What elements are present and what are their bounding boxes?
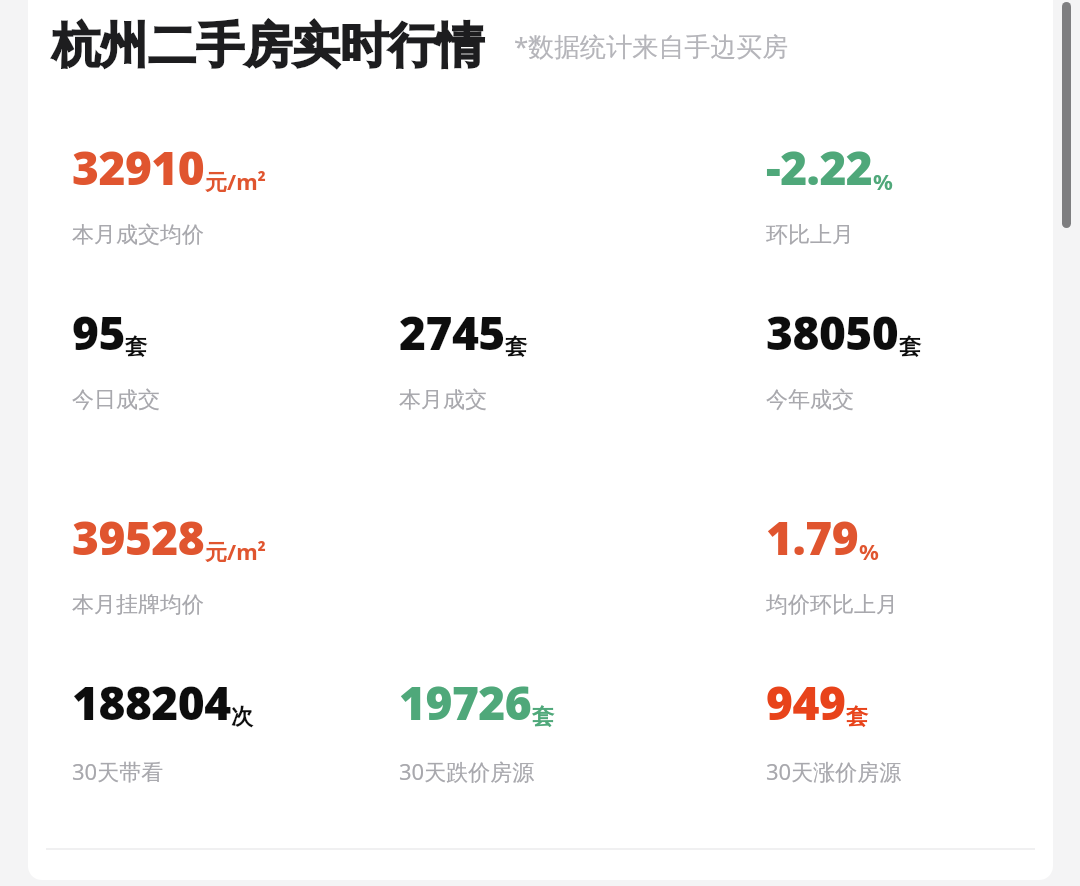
staticText: *数据统计来自手边买房 — [514, 28, 789, 64]
button[interactable]: 1.79 — [766, 506, 898, 619]
staticText: 2745 — [399, 301, 505, 364]
button[interactable]: 949 — [766, 671, 902, 786]
staticText: 今日成交 — [72, 386, 160, 414]
staticText: 套 — [505, 333, 527, 361]
staticText: 杭州二手房实时行情 — [52, 16, 484, 76]
button[interactable]: 32910 — [72, 136, 266, 249]
staticText: 1.79 — [766, 506, 859, 569]
staticText: 套 — [899, 333, 921, 361]
staticText: 949 — [766, 671, 846, 734]
button[interactable]: 95 — [72, 301, 160, 414]
staticText: % — [873, 166, 893, 196]
staticText: -2.22 — [766, 136, 873, 199]
staticText: 30天跌价房源 — [399, 756, 535, 786]
staticText: 30天带看 — [72, 756, 164, 786]
button[interactable]: 188204 — [72, 671, 253, 786]
staticText: 95 — [72, 301, 125, 364]
staticText: 本月成交均价 — [72, 221, 204, 249]
staticText: 38050 — [766, 301, 899, 364]
staticText: 套 — [846, 703, 868, 731]
staticText: 环比上月 — [766, 221, 854, 249]
staticText: 32910 — [72, 136, 205, 199]
staticText: 30天涨价房源 — [766, 756, 902, 786]
other: Scrollbar — [1062, 2, 1071, 228]
button[interactable]: 39528 — [72, 506, 266, 619]
staticText: % — [859, 536, 879, 566]
staticText: 188204 — [72, 671, 231, 734]
button[interactable]: 38050 — [766, 301, 921, 414]
button[interactable]: -2.22 — [766, 136, 893, 249]
staticText: 元/m² — [205, 536, 266, 566]
staticText: 今年成交 — [766, 386, 854, 414]
staticText: 本月成交 — [399, 386, 487, 414]
staticText: 套 — [532, 703, 554, 731]
staticText: 元/m² — [205, 166, 266, 196]
staticText: 均价环比上月 — [766, 591, 898, 619]
staticText: 39528 — [72, 506, 205, 569]
staticText: 本月挂牌均价 — [72, 591, 204, 619]
staticText: 套 — [125, 333, 147, 361]
staticText: 19726 — [399, 671, 532, 734]
staticText: 次 — [231, 703, 253, 731]
button[interactable]: 19726 — [399, 671, 554, 786]
button[interactable]: 2745 — [399, 301, 527, 414]
